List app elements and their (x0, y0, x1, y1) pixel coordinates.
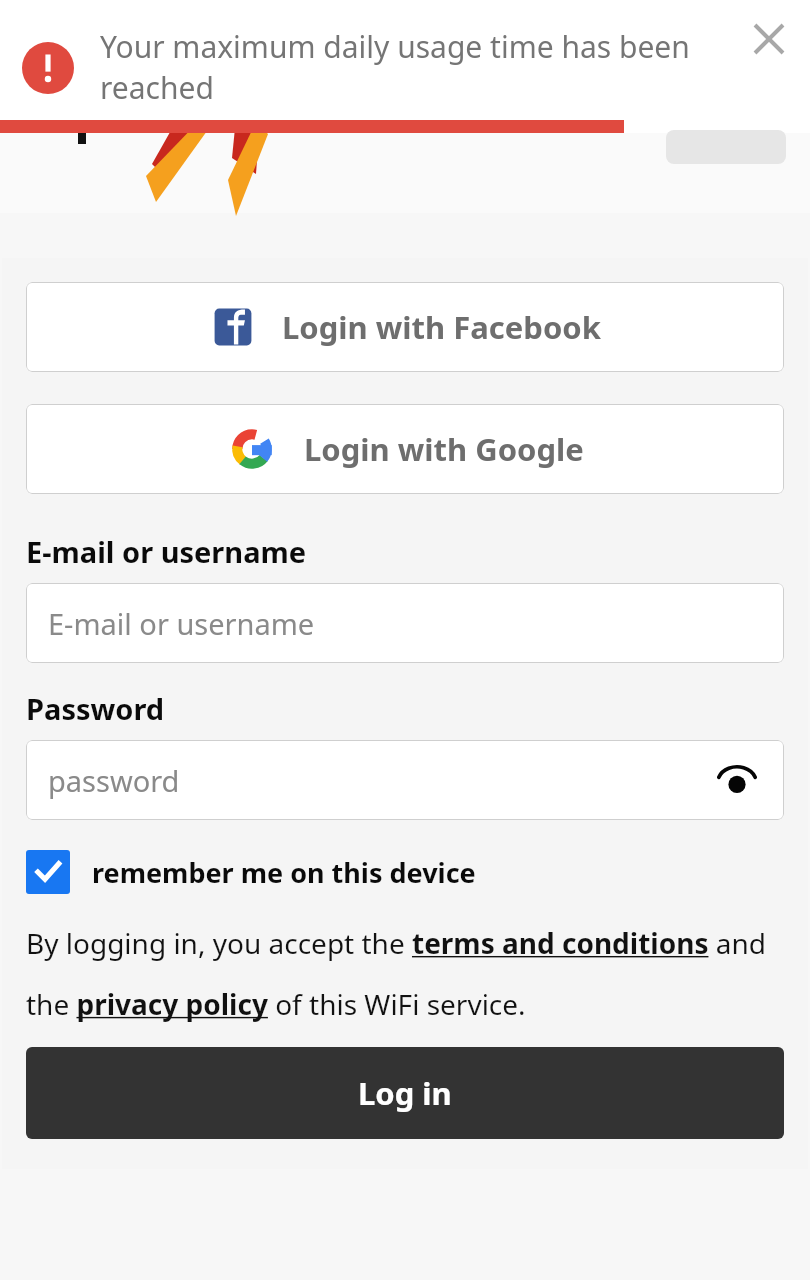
button[interactable]: remember me on this device (26, 850, 784, 894)
staticText: E-mail or username (26, 532, 307, 571)
button[interactable]: Log in (26, 1047, 784, 1139)
staticText: Login with Google (304, 428, 584, 470)
staticText: Login with Facebook (282, 306, 601, 348)
button[interactable]: Show password (712, 755, 762, 805)
staticText: Log in (358, 1072, 452, 1114)
button[interactable]: Login with Google (26, 404, 784, 494)
staticText: Your maximum daily usage time has been r… (100, 26, 732, 108)
button[interactable]: password (26, 740, 784, 820)
button[interactable]: Login with Facebook (26, 282, 784, 372)
staticText: Password (26, 689, 165, 728)
staticText: E-mail or username (48, 604, 762, 643)
button[interactable]: By logging in, you accept the terms and … (26, 924, 784, 1023)
staticText: password (48, 761, 712, 800)
staticText: remember me on this device (92, 854, 476, 891)
button[interactable]: E-mail or username (26, 583, 784, 663)
button[interactable]: Close notification (742, 12, 796, 66)
